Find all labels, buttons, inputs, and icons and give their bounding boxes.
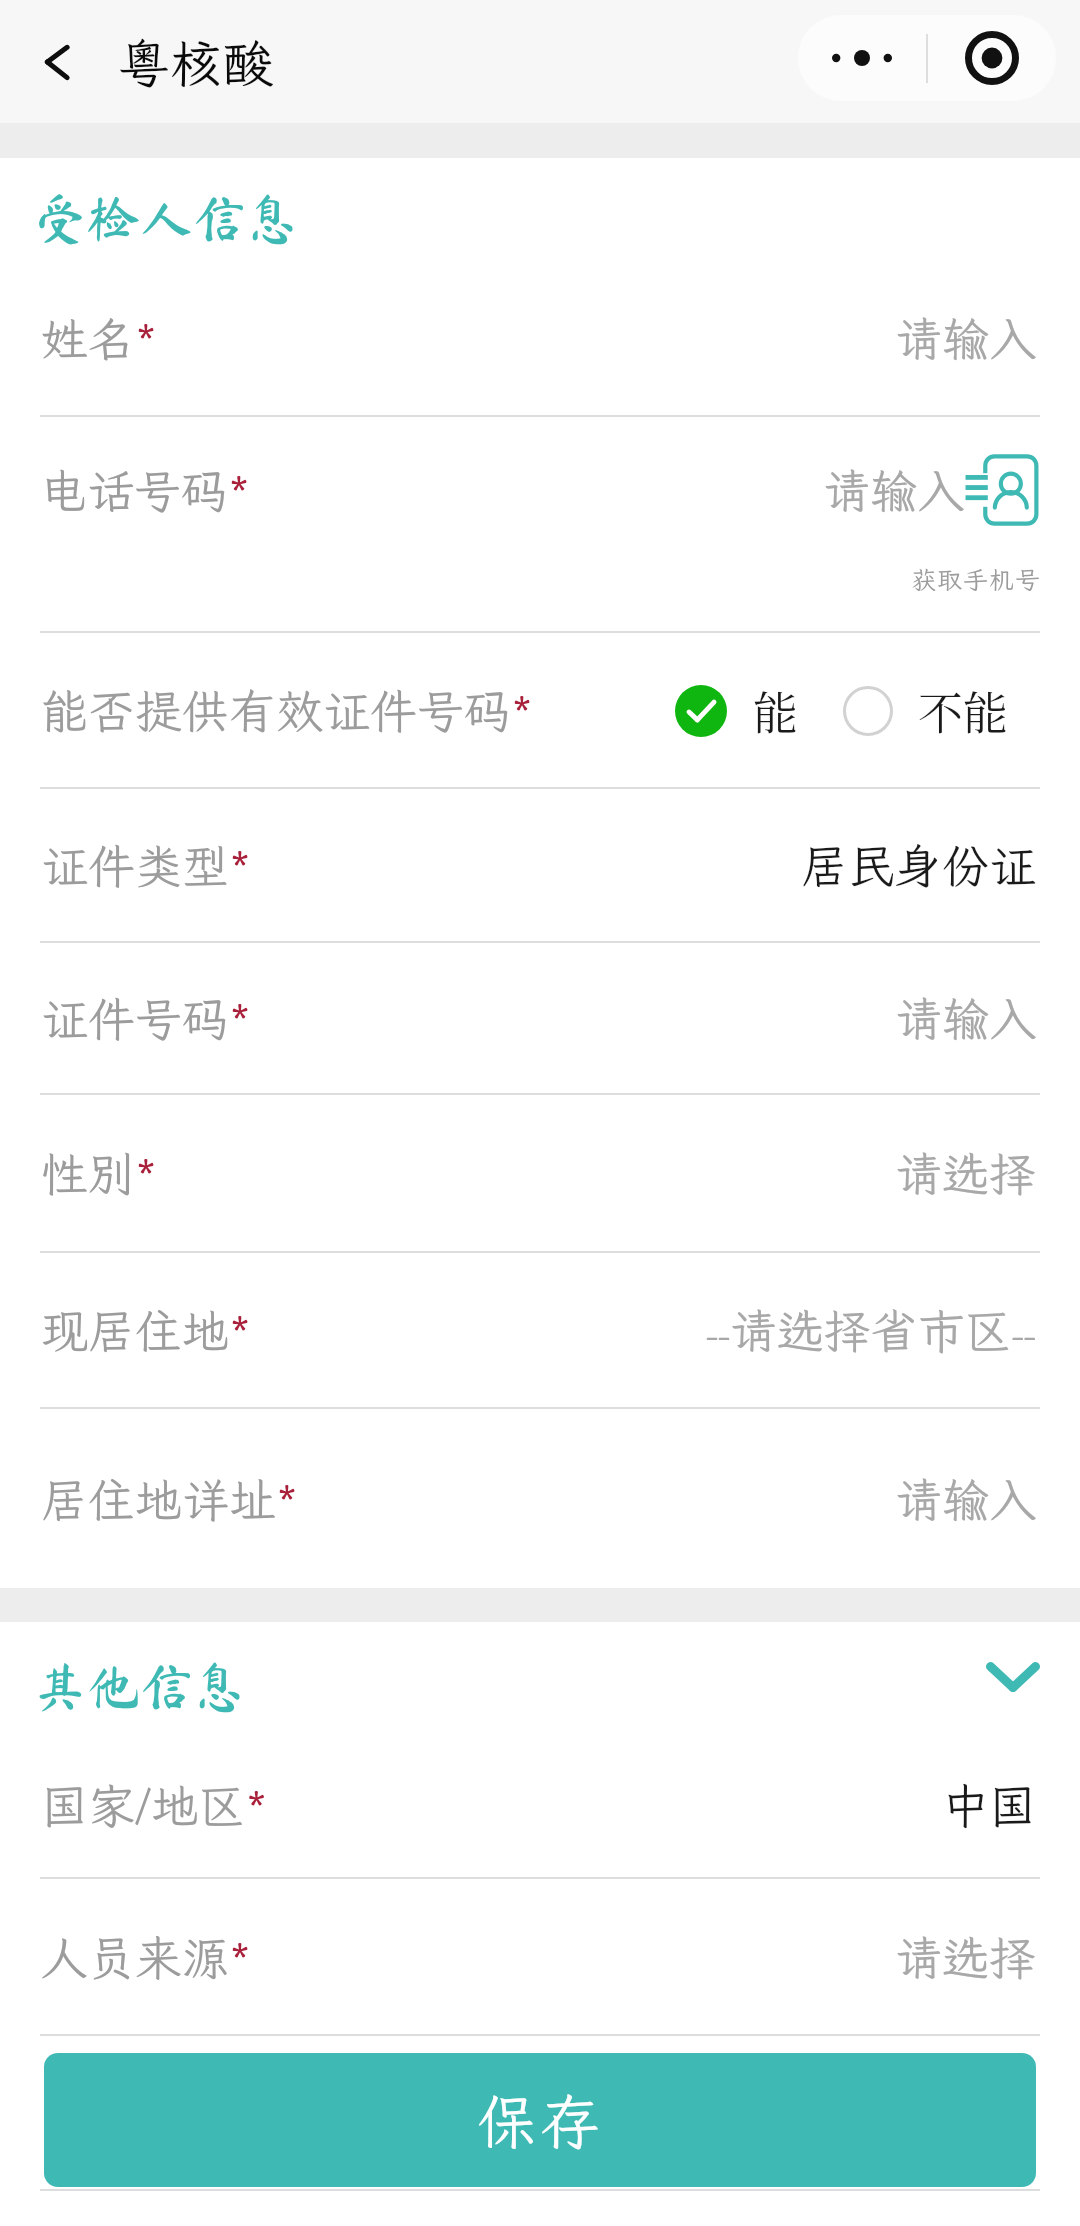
staticText: 能否提供有效证件号码* — [41, 679, 533, 741]
staticText: 能 — [753, 678, 799, 743]
staticText: --请选择省市区-- — [706, 1299, 1036, 1361]
staticText: 受检人信息 — [34, 191, 299, 244]
button[interactable]: 性别* — [0, 1095, 1080, 1251]
staticText: 不能 — [918, 678, 1009, 743]
button[interactable]: More options — [798, 15, 926, 101]
staticText: 姓名* — [41, 307, 157, 369]
button[interactable]: 其他信息 — [0, 1622, 1080, 1732]
staticText: 证件号码* — [41, 987, 251, 1049]
button[interactable]: 保存 — [44, 2053, 1036, 2187]
button[interactable]: Close mini program — [928, 15, 1056, 101]
other: Get phone number from contacts — [964, 455, 1040, 525]
button[interactable]: 姓名* — [0, 261, 1080, 415]
button[interactable]: 国家/地区* — [0, 1732, 1080, 1877]
button[interactable]: 人员来源* — [0, 1879, 1080, 2034]
button[interactable]: 现居住地* — [0, 1253, 1080, 1407]
staticText: 国家/地区* — [41, 1774, 268, 1836]
button[interactable]: Back — [34, 39, 80, 85]
staticText: 证件类型* — [41, 834, 251, 896]
staticText: 请输入 — [823, 459, 964, 521]
button[interactable]: 电话号码* — [0, 417, 1080, 631]
staticText: 获取手机号 — [911, 563, 1042, 596]
staticText: 性别* — [41, 1142, 157, 1204]
staticText: 请输入 — [895, 987, 1036, 1049]
other: Collapse section — [986, 1662, 1040, 1692]
staticText: 中国 — [942, 1774, 1036, 1836]
staticText: 现居住地* — [41, 1299, 251, 1361]
staticText: 其他信息 — [34, 1659, 246, 1712]
staticText: 请选择 — [895, 1142, 1036, 1204]
staticText: 电话号码* — [40, 459, 250, 521]
button[interactable]: 居住地详址* — [0, 1409, 1080, 1588]
staticText: 人员来源* — [41, 1926, 251, 1988]
staticText: 粤核酸 — [118, 28, 275, 96]
staticText: 居民身份证 — [801, 834, 1036, 896]
staticText: 请输入 — [895, 307, 1036, 369]
button[interactable]: 能否提供有效证件号码* — [0, 633, 1080, 787]
button[interactable]: 证件类型* — [0, 789, 1080, 941]
staticText: 居住地详址* — [41, 1468, 298, 1530]
staticText: 请输入 — [895, 1468, 1036, 1530]
button[interactable]: 不能 — [843, 678, 1009, 743]
staticText: 保存 — [477, 2081, 603, 2160]
staticText: 请选择 — [895, 1926, 1036, 1988]
button[interactable]: 能 — [675, 678, 799, 743]
button[interactable]: 证件号码* — [0, 943, 1080, 1093]
